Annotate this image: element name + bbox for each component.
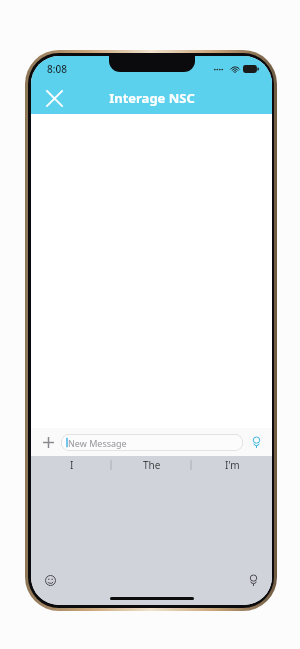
button[interactable]: Add attachment	[38, 432, 58, 452]
button[interactable]: Close	[39, 83, 69, 113]
staticText: I'm	[225, 458, 240, 472]
button[interactable]: Voice message	[247, 433, 265, 451]
staticText: I	[70, 458, 74, 472]
staticText: New Message	[68, 437, 127, 449]
button[interactable]: I	[31, 456, 112, 474]
staticText: Interage NSC	[109, 89, 195, 107]
button[interactable]: Dictation	[244, 571, 262, 589]
button[interactable]: I'm	[192, 456, 272, 474]
button[interactable]: New Message	[61, 434, 243, 451]
staticText: The	[143, 458, 161, 472]
button[interactable]: The	[112, 456, 192, 474]
staticText: 8:08	[47, 62, 67, 76]
button[interactable]: Emoji	[41, 571, 59, 589]
